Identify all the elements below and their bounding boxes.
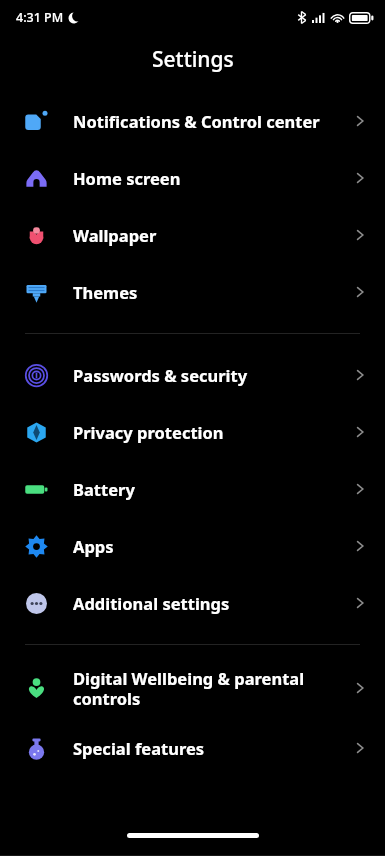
other: Open Home screen — [349, 167, 371, 189]
button[interactable]: Passwords & security — [0, 346, 385, 403]
staticText: Passwords & security — [73, 364, 248, 386]
other: Open Digital Wellbeing & parental contro… — [349, 677, 371, 699]
staticText: Privacy protection — [73, 421, 224, 443]
staticText: Notifications & Control center — [73, 110, 320, 132]
other: Open Special features — [349, 737, 371, 759]
staticText: Additional settings — [73, 592, 230, 614]
staticText: Home screen — [73, 167, 181, 189]
staticText: Battery — [73, 478, 135, 500]
button[interactable]: Special features — [0, 719, 385, 776]
button[interactable]: Additional settings — [0, 574, 385, 631]
other: Open Additional settings — [349, 592, 371, 614]
other: Open Privacy protection — [349, 421, 371, 443]
staticText: Wallpaper — [73, 224, 157, 246]
button[interactable]: Notifications & Control center — [0, 92, 385, 149]
button[interactable]: Privacy protection — [0, 403, 385, 460]
staticText: Digital Wellbeing & parental controls — [73, 667, 305, 710]
other: Open Passwords & security — [349, 364, 371, 386]
button[interactable]: Themes — [0, 263, 385, 320]
button[interactable]: Battery — [0, 460, 385, 517]
button[interactable]: Wallpaper — [0, 206, 385, 263]
other: Open Notifications & Control center — [349, 110, 371, 132]
other: Open Apps — [349, 535, 371, 557]
other: Open Wallpaper — [349, 224, 371, 246]
other: Open Battery — [349, 478, 371, 500]
button[interactable]: Home screen — [0, 149, 385, 206]
staticText: Settings — [152, 45, 234, 74]
staticText: Apps — [73, 535, 114, 557]
button[interactable]: Apps — [0, 517, 385, 574]
other: Open Themes — [349, 281, 371, 303]
staticText: Themes — [73, 281, 138, 303]
staticText: 4:31 PM — [16, 9, 64, 26]
staticText: Special features — [73, 737, 205, 759]
button[interactable]: Digital Wellbeing & parental controls — [0, 657, 385, 719]
